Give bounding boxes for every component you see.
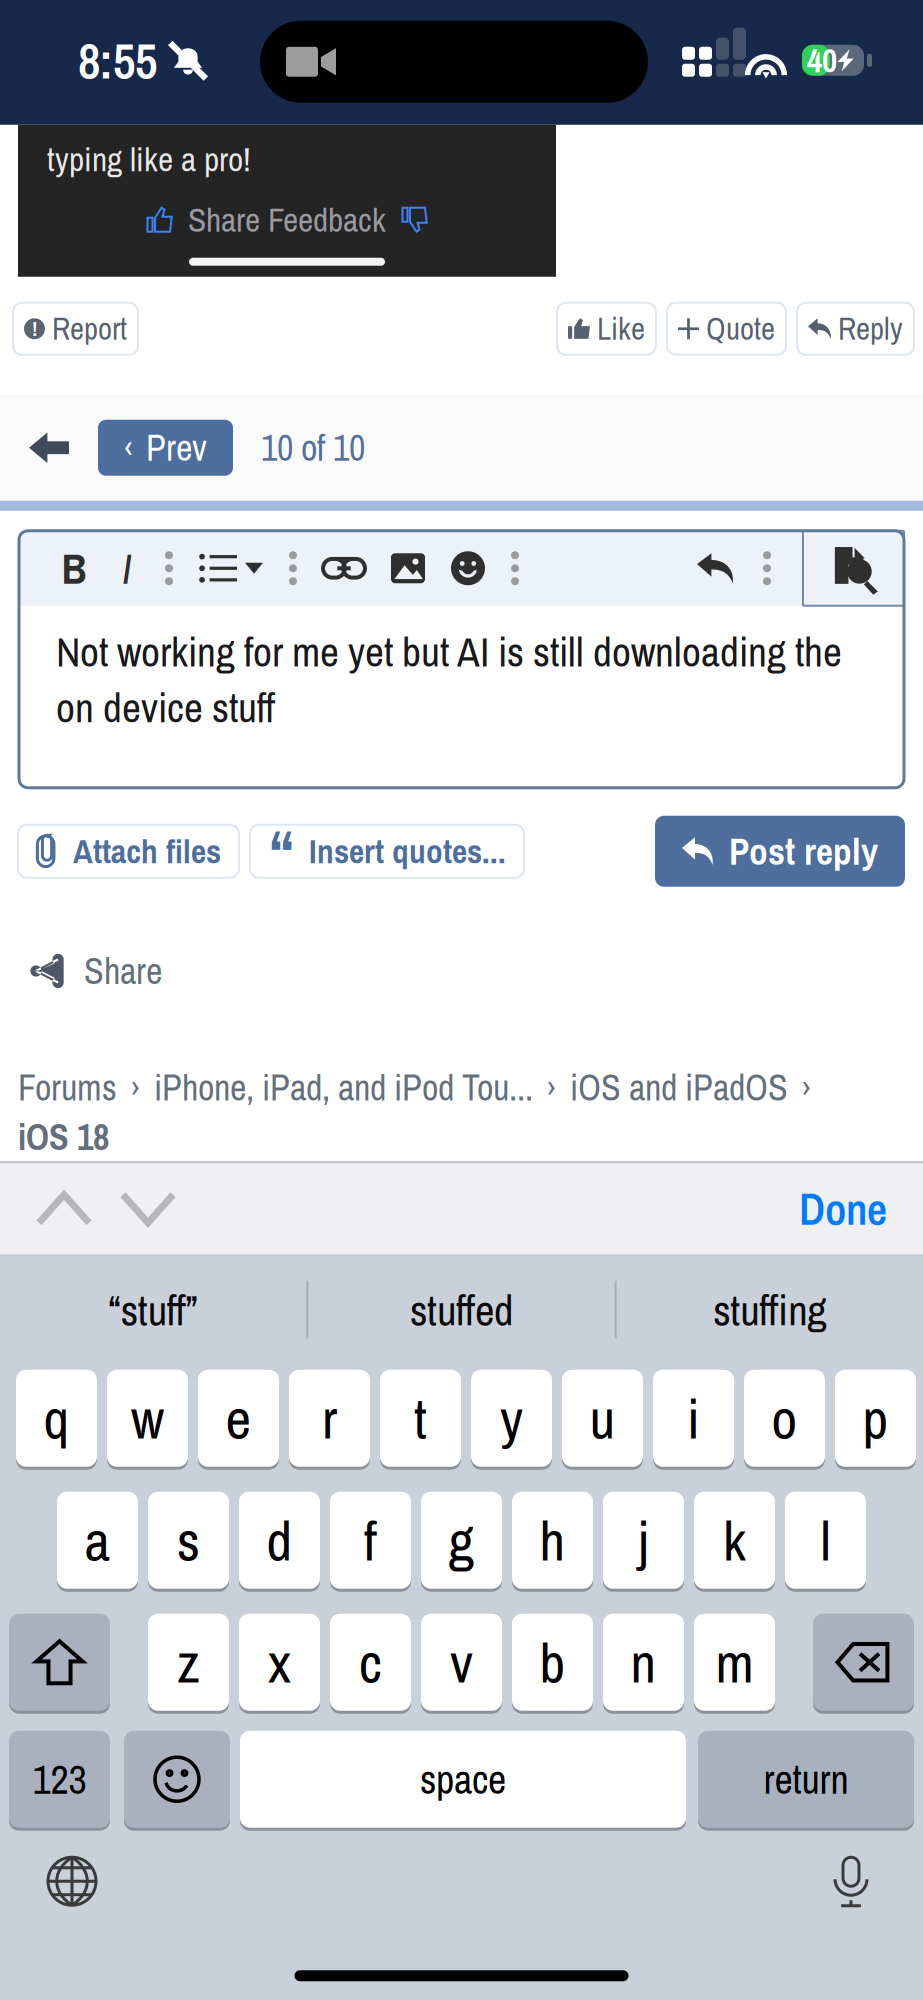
button[interactable]: e bbox=[198, 1368, 279, 1468]
staticText: 40 bbox=[807, 38, 837, 83]
button[interactable]: Post reply bbox=[655, 816, 905, 887]
button[interactable]: o bbox=[744, 1368, 825, 1468]
button[interactable]: d bbox=[239, 1490, 320, 1590]
button[interactable]: Change keyboard bbox=[32, 1843, 112, 1919]
staticText: iOS and iPadOS bbox=[570, 1063, 788, 1112]
button[interactable]: stuffing bbox=[617, 1281, 923, 1338]
button[interactable]: “stuff” bbox=[0, 1281, 306, 1338]
button[interactable] bbox=[9, 1612, 110, 1712]
staticText: I bbox=[122, 539, 132, 597]
button[interactable]: q bbox=[16, 1368, 97, 1468]
button[interactable]: z bbox=[148, 1612, 229, 1712]
staticText: “stuff” bbox=[109, 1281, 198, 1338]
staticText: return bbox=[763, 1752, 848, 1806]
button[interactable]: 10 of 10 bbox=[261, 423, 365, 472]
button[interactable]: a bbox=[57, 1490, 138, 1590]
staticText: l bbox=[820, 1502, 830, 1578]
button[interactable]: h bbox=[512, 1490, 593, 1590]
button[interactable]: w bbox=[107, 1368, 188, 1468]
button[interactable]: 123 bbox=[9, 1729, 110, 1829]
button[interactable]: Insert emoji bbox=[451, 551, 485, 585]
button[interactable]: Insert link bbox=[323, 555, 365, 581]
staticText: m bbox=[715, 1624, 753, 1700]
button[interactable] bbox=[199, 554, 263, 583]
button[interactable]: space bbox=[240, 1729, 686, 1829]
staticText: stuffing bbox=[713, 1281, 826, 1338]
staticText: Like bbox=[597, 308, 645, 349]
button[interactable]: c bbox=[330, 1612, 411, 1712]
button[interactable]: i bbox=[653, 1368, 734, 1468]
button[interactable]: ‹ bbox=[98, 420, 233, 476]
staticText: Reply bbox=[838, 308, 903, 349]
button[interactable]: Back bbox=[20, 419, 78, 477]
button[interactable]: Undo bbox=[697, 553, 733, 583]
button[interactable]: x bbox=[239, 1612, 320, 1712]
staticText: o bbox=[771, 1380, 797, 1456]
button[interactable] bbox=[813, 1612, 914, 1712]
button[interactable]: Attach files bbox=[18, 825, 239, 878]
staticText: v bbox=[450, 1624, 473, 1700]
button[interactable]: n bbox=[603, 1612, 684, 1712]
staticText: p bbox=[862, 1380, 888, 1456]
button[interactable]: v bbox=[421, 1612, 502, 1712]
button[interactable]: Previous field bbox=[22, 1164, 106, 1254]
staticText: i bbox=[687, 1380, 700, 1456]
button[interactable]: Forums bbox=[18, 1063, 117, 1112]
staticText: ‹ bbox=[124, 426, 133, 469]
staticText: w bbox=[131, 1380, 164, 1456]
button[interactable]: g bbox=[421, 1490, 502, 1590]
staticText: Not working for me yet but AI is still d… bbox=[56, 624, 842, 735]
button[interactable]: iOS and iPadOS bbox=[570, 1063, 788, 1112]
staticText: u bbox=[589, 1380, 615, 1456]
staticText: y bbox=[500, 1380, 523, 1456]
button[interactable] bbox=[124, 1729, 230, 1829]
staticText: q bbox=[43, 1380, 69, 1456]
button[interactable]: r bbox=[289, 1368, 370, 1468]
staticText: 8:55 bbox=[78, 27, 157, 94]
button[interactable]: “ bbox=[250, 825, 524, 878]
staticText: f bbox=[364, 1502, 377, 1578]
button[interactable]: Like bbox=[557, 303, 656, 355]
staticText: e bbox=[225, 1380, 251, 1456]
button[interactable]: k bbox=[694, 1490, 775, 1590]
button[interactable]: ! bbox=[13, 303, 138, 355]
staticText: B bbox=[61, 539, 86, 597]
button[interactable]: Preview bbox=[803, 531, 904, 606]
button[interactable]: s bbox=[148, 1490, 229, 1590]
staticText: iPhone, iPad, and iPod Tou... bbox=[154, 1063, 533, 1112]
button[interactable]: Dictate bbox=[811, 1843, 891, 1919]
button[interactable]: l bbox=[785, 1490, 866, 1590]
button[interactable]: y bbox=[471, 1368, 552, 1468]
button[interactable]: iPhone, iPad, and iPod Tou... bbox=[154, 1063, 533, 1112]
button[interactable]: f bbox=[330, 1490, 411, 1590]
staticText: Attach files bbox=[73, 829, 221, 874]
button[interactable]: return bbox=[698, 1729, 914, 1829]
button[interactable]: I bbox=[115, 539, 139, 597]
button[interactable]: m bbox=[694, 1612, 775, 1712]
button[interactable]: Done bbox=[799, 1164, 887, 1254]
staticText: › bbox=[131, 1066, 140, 1109]
button[interactable]: p bbox=[835, 1368, 916, 1468]
button[interactable]: Quote bbox=[667, 303, 786, 355]
button[interactable]: stuffed bbox=[308, 1281, 615, 1338]
button[interactable]: Next field bbox=[106, 1164, 190, 1254]
button[interactable]: j bbox=[603, 1490, 684, 1590]
button[interactable]: t bbox=[380, 1368, 461, 1468]
staticText: Report bbox=[52, 308, 127, 349]
staticText: b bbox=[539, 1624, 565, 1700]
staticText: Done bbox=[799, 1179, 887, 1238]
staticText: iOS 18 bbox=[18, 1113, 109, 1161]
button[interactable]: u bbox=[562, 1368, 643, 1468]
staticText: h bbox=[539, 1502, 565, 1578]
button[interactable]: Share bbox=[31, 947, 162, 995]
button[interactable]: b bbox=[512, 1612, 593, 1712]
staticText: k bbox=[723, 1502, 746, 1578]
button[interactable]: B bbox=[59, 539, 89, 597]
staticText: Quote bbox=[706, 308, 775, 349]
button[interactable]: Insert image bbox=[391, 553, 425, 583]
button[interactable]: Reply bbox=[797, 303, 914, 355]
staticText: x bbox=[268, 1624, 291, 1700]
staticText: Forums bbox=[18, 1063, 117, 1112]
staticText: Insert quotes... bbox=[309, 829, 506, 874]
staticText: Share bbox=[84, 947, 162, 995]
